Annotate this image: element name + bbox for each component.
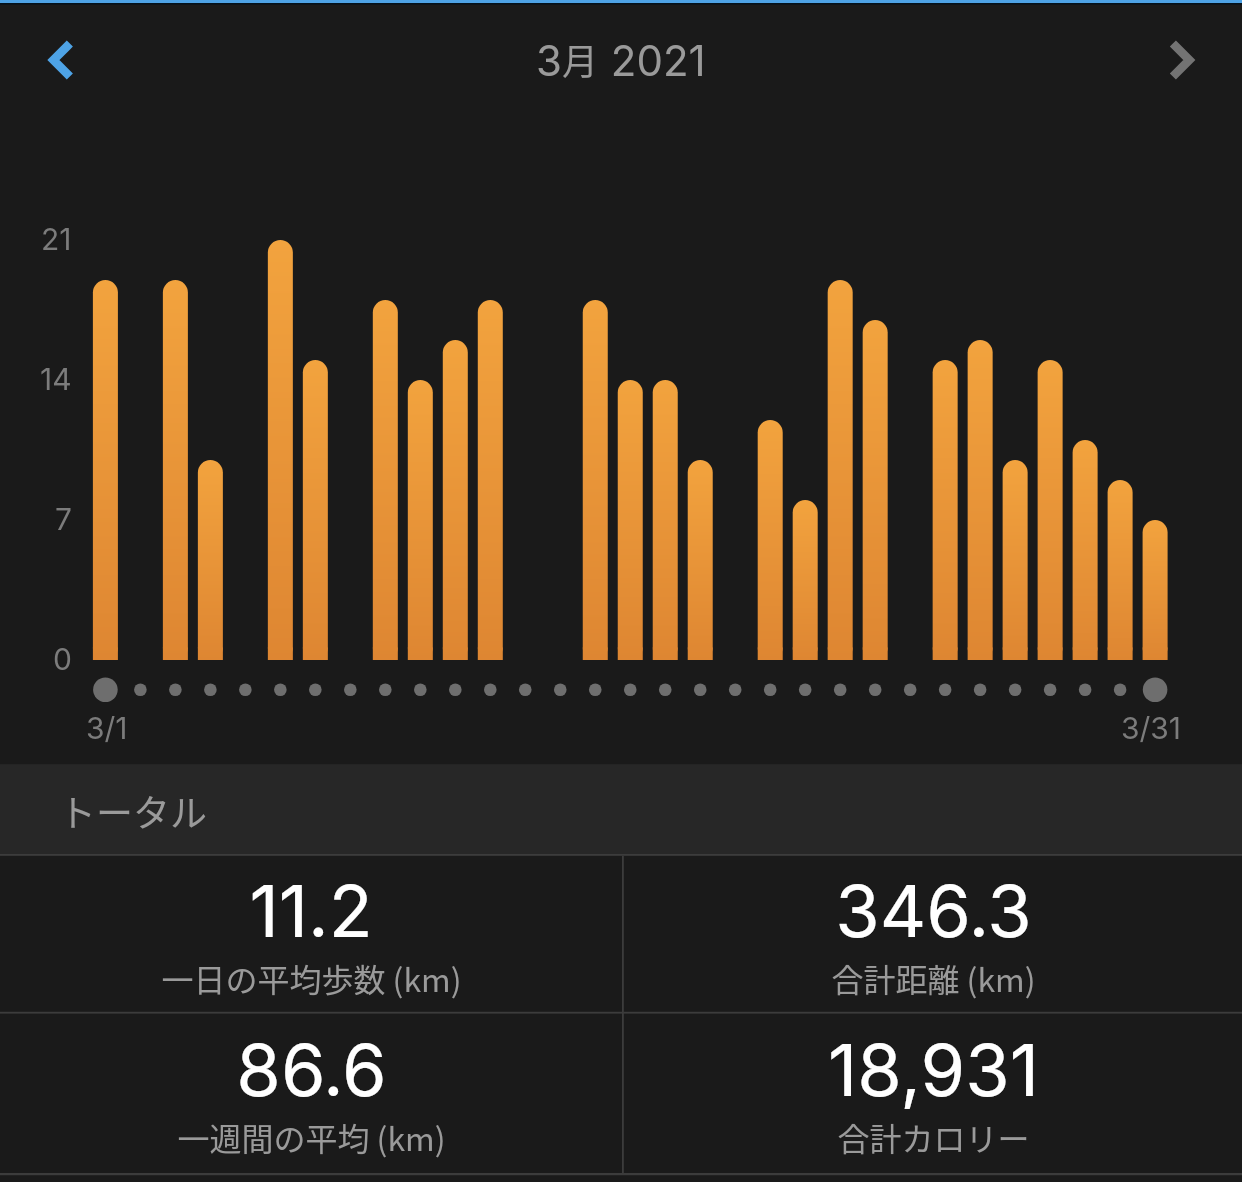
staticText: トータル [59,784,207,838]
staticText: 86.6 [236,1026,387,1113]
button[interactable]: 346.3 [624,855,1242,1013]
staticText: 合計距離 (km) [831,955,1036,1001]
staticText: 3 [536,35,562,86]
button[interactable]: Next month [1126,4,1238,116]
staticText: 14 [40,361,72,397]
staticText: 3/1 [86,710,128,746]
button[interactable]: 18,931 [624,1014,1242,1173]
staticText: 3/31 [1121,710,1182,746]
staticText: 一日の平均歩数 (km) [161,955,462,1001]
staticText: 346.3 [835,867,1032,954]
staticText: 月 [562,33,599,85]
staticText: 7 [55,501,72,537]
button[interactable]: Previous month [4,4,116,116]
staticText: 18,931 [828,1026,1039,1113]
button[interactable]: 11.2 [0,855,622,1013]
button[interactable]: 86.6 [0,1014,622,1173]
staticText: 2021 [599,35,706,86]
staticText: 一週間の平均 (km) [177,1114,446,1160]
staticText: 合計カロリー [837,1114,1030,1160]
staticText: 0 [53,641,72,677]
staticText: 21 [41,221,72,257]
staticText: 11.2 [249,867,373,954]
